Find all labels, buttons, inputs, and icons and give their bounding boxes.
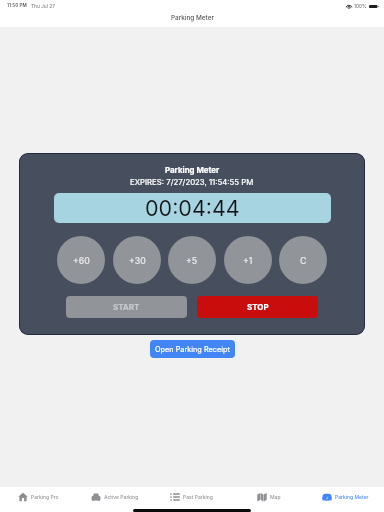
staticText: 00:04:44 bbox=[145, 195, 240, 221]
staticText: +1 bbox=[243, 255, 253, 266]
staticText: +60 bbox=[73, 255, 90, 266]
button[interactable]: Open Parking Receipt bbox=[150, 340, 235, 358]
staticText: Open Parking Receipt bbox=[155, 345, 230, 354]
staticText: Thu Jul 27 bbox=[31, 3, 55, 9]
button[interactable]: Map bbox=[230, 487, 307, 507]
button[interactable]: Active Parking bbox=[76, 487, 153, 507]
staticText: C bbox=[300, 255, 307, 266]
button[interactable]: +30 bbox=[113, 236, 161, 284]
button[interactable]: C bbox=[279, 236, 327, 284]
button[interactable]: Parking Pro bbox=[0, 487, 76, 507]
button[interactable]: STOP bbox=[197, 296, 318, 318]
button[interactable]: Past Parking bbox=[153, 487, 230, 507]
staticText: EXPIRES: 7/27/2023, 11:54:55 PM bbox=[130, 177, 254, 186]
staticText: START bbox=[113, 302, 140, 312]
staticText: Parking Meter bbox=[171, 14, 214, 22]
staticText: 11:50 PM bbox=[7, 3, 27, 9]
staticText: +5 bbox=[186, 255, 198, 266]
button[interactable]: +60 bbox=[57, 236, 105, 284]
staticText: Parking Meter bbox=[335, 494, 369, 500]
staticText: Parking Pro bbox=[31, 494, 59, 500]
staticText: +30 bbox=[129, 255, 146, 266]
staticText: 100% bbox=[354, 3, 367, 9]
button[interactable]: START bbox=[66, 296, 187, 318]
staticText: Map bbox=[270, 494, 281, 500]
staticText: Past Parking bbox=[183, 494, 213, 500]
button[interactable]: Parking Meter bbox=[307, 487, 384, 507]
staticText: STOP bbox=[247, 302, 269, 312]
button[interactable]: +1 bbox=[224, 236, 272, 284]
staticText: Active Parking bbox=[104, 494, 139, 500]
button[interactable]: +5 bbox=[168, 236, 216, 284]
staticText: Parking Meter bbox=[165, 165, 220, 175]
